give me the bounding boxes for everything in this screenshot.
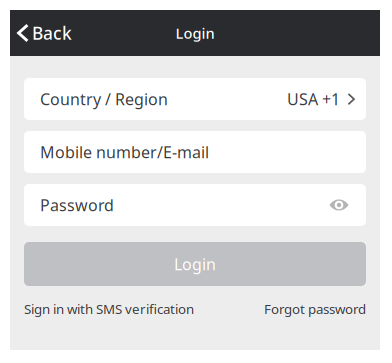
button[interactable]: Password (24, 184, 366, 226)
button[interactable]: Sign in with SMS verification (24, 296, 194, 322)
button[interactable]: Country / Region (24, 78, 366, 120)
staticText: Forgot password (264, 300, 366, 318)
button[interactable]: Mobile number/E-mail (24, 131, 366, 173)
staticText: Password (40, 194, 114, 216)
staticText: Login (175, 23, 214, 43)
staticText: Mobile number/E-mail (40, 141, 209, 163)
button[interactable]: Back (10, 10, 82, 56)
staticText: Login (174, 253, 216, 275)
button[interactable]: Show password (324, 190, 354, 220)
staticText: USA +1 (287, 88, 340, 110)
button[interactable]: Login (24, 242, 366, 286)
button[interactable]: Forgot password (264, 296, 366, 322)
staticText: Country / Region (40, 88, 168, 110)
staticText: Sign in with SMS verification (24, 300, 194, 318)
staticText: Back (32, 21, 72, 44)
